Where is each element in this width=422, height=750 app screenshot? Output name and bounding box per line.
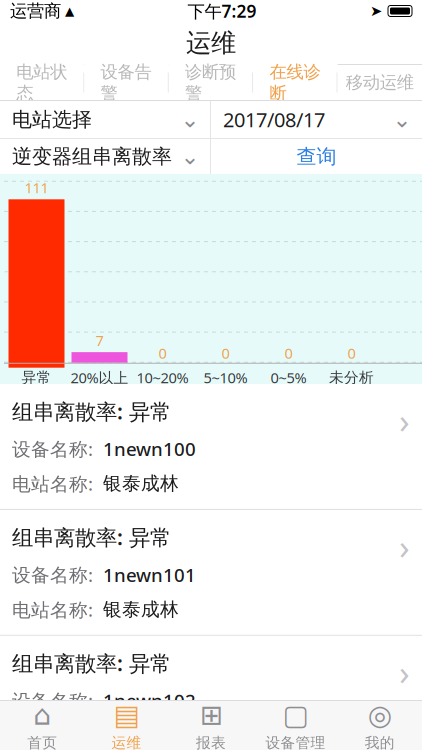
button[interactable]: ◎ — [338, 701, 422, 749]
staticText: 银泰成林 — [103, 598, 179, 621]
staticText: 0 — [284, 343, 292, 363]
staticText: ⌄ — [392, 107, 411, 132]
staticText: 0 — [158, 343, 166, 363]
staticText: ▢ — [282, 699, 308, 731]
staticText: ⌄ — [180, 107, 199, 132]
staticText: 电站状态 — [16, 61, 67, 104]
button[interactable]: 组串离散率: 异常 — [0, 636, 422, 750]
staticText: 运维 — [112, 734, 142, 750]
staticText: 移动运维 — [346, 72, 414, 93]
staticText: 下午7:29 — [187, 0, 256, 22]
button[interactable]: 查询 — [211, 139, 422, 174]
staticText: 银泰成林 — [103, 724, 179, 747]
button[interactable]: ▢ — [253, 701, 338, 749]
staticText: ➤ — [370, 3, 382, 19]
staticText: ⌄ — [180, 144, 199, 169]
staticText: 设备名称: — [12, 436, 103, 461]
staticText: 电站名称: — [12, 723, 103, 748]
staticText: 0 — [347, 343, 355, 363]
staticText: 10~20% — [136, 368, 188, 387]
staticText: 电站选择 — [12, 107, 92, 132]
staticText: 查询 — [296, 144, 336, 169]
staticText: 1newn100 — [103, 436, 196, 461]
staticText: › — [399, 397, 410, 443]
button[interactable]: 移动运维 — [338, 65, 422, 100]
staticText: 电站名称: — [12, 597, 103, 622]
staticText: › — [399, 649, 410, 695]
staticText: 报表 — [196, 734, 226, 750]
staticText: 未分析 — [329, 368, 374, 386]
button[interactable]: 组串离散率: 异常 — [0, 510, 422, 636]
button[interactable]: 2017/08/17 — [211, 101, 422, 138]
staticText: 首页 — [27, 734, 57, 750]
staticText: 设备告警 — [101, 61, 152, 104]
staticText: 异常 — [21, 368, 51, 386]
staticText: 设备管理 — [265, 734, 325, 750]
staticText: 2017/08/17 — [223, 106, 325, 133]
staticText: ▤ — [114, 699, 140, 731]
staticText: 电站名称: — [12, 471, 103, 496]
staticText: 组串离散率: 异常 — [12, 649, 171, 677]
staticText: 银泰成林 — [103, 472, 179, 495]
button[interactable]: 设备告警 — [84, 65, 169, 100]
staticText: 组串离散率: 异常 — [12, 523, 171, 551]
button[interactable]: ⊞ — [169, 701, 253, 749]
staticText: › — [399, 523, 410, 569]
button[interactable]: 电站状态 — [0, 65, 84, 100]
button[interactable]: ▤ — [84, 701, 169, 749]
staticText: 1newn102 — [103, 688, 196, 713]
staticText: 7 — [95, 331, 103, 350]
staticText: 在线诊断 — [269, 61, 320, 104]
staticText: 诊断预警 — [185, 61, 236, 104]
staticText: 逆变器组串离散率 — [12, 144, 172, 169]
staticText: 设备名称: — [12, 688, 103, 713]
button[interactable]: 逆变器组串离散率 — [0, 139, 210, 174]
staticText: ⌂ — [33, 699, 51, 731]
button[interactable]: 组串离散率: 异常 — [0, 384, 422, 510]
staticText: 设备名称: — [12, 562, 103, 587]
staticText: ⊞ — [199, 699, 222, 731]
staticText: 20%以上 — [70, 368, 128, 387]
staticText: 组串离散率: 异常 — [12, 397, 171, 425]
button[interactable]: 在线诊断 — [253, 65, 338, 100]
staticText: 运营商 — [10, 0, 61, 22]
staticText: ◎ — [368, 699, 392, 731]
staticText: 0~5% — [270, 368, 306, 387]
button[interactable]: 电站选择 — [0, 101, 210, 138]
staticText: 111 — [24, 178, 48, 197]
staticText: 1newn101 — [103, 562, 196, 587]
staticText: ▲ — [65, 4, 74, 18]
button[interactable]: 诊断预警 — [169, 65, 253, 100]
staticText: 0 — [221, 343, 229, 363]
staticText: 我的 — [365, 734, 395, 750]
button[interactable]: ⌂ — [0, 701, 84, 749]
staticText: 5~10% — [203, 368, 247, 387]
staticText: 运维 — [186, 27, 236, 58]
